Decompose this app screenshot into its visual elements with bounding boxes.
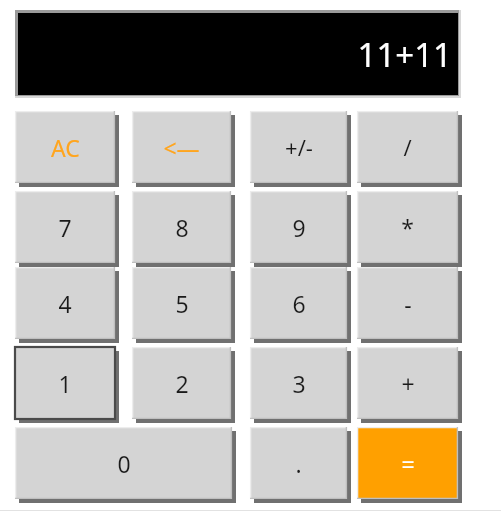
button[interactable]: 0 xyxy=(15,427,236,503)
button[interactable]: = xyxy=(357,427,462,503)
button[interactable]: 5 xyxy=(132,267,235,343)
staticText: 6 xyxy=(292,288,306,319)
button[interactable]: / xyxy=(357,111,462,187)
staticText: / xyxy=(403,132,412,162)
button[interactable]: 9 xyxy=(250,191,351,267)
staticText: 5 xyxy=(175,288,189,319)
staticText: 3 xyxy=(292,368,306,399)
staticText: . xyxy=(295,448,302,479)
staticText: 1 xyxy=(58,368,72,399)
button[interactable]: +/- xyxy=(250,111,351,187)
button[interactable]: 8 xyxy=(132,191,235,267)
button[interactable]: * xyxy=(357,191,462,267)
button[interactable]: AC xyxy=(15,111,119,187)
staticText: 2 xyxy=(175,368,189,399)
staticText: 9 xyxy=(292,212,306,243)
staticText: 4 xyxy=(58,288,72,319)
button[interactable]: 3 xyxy=(250,347,351,423)
button[interactable]: + xyxy=(357,347,462,423)
button[interactable]: - xyxy=(357,267,462,343)
staticText: 0 xyxy=(117,448,131,479)
staticText: = xyxy=(401,448,415,479)
staticText: 11+11 xyxy=(357,32,452,77)
staticText: <— xyxy=(163,132,200,163)
button[interactable]: 6 xyxy=(250,267,351,343)
staticText: 7 xyxy=(58,212,72,243)
button[interactable]: . xyxy=(250,427,351,503)
staticText: + xyxy=(401,368,415,399)
button[interactable]: 2 xyxy=(132,347,235,423)
staticText: AC xyxy=(51,132,80,163)
button[interactable]: 1 xyxy=(15,347,119,423)
button[interactable]: 7 xyxy=(15,191,119,267)
staticText: * xyxy=(401,212,414,243)
staticText: - xyxy=(404,288,412,319)
button[interactable]: 4 xyxy=(15,267,119,343)
button[interactable]: Backspace xyxy=(132,111,235,187)
staticText: 8 xyxy=(175,212,189,243)
staticText: +/- xyxy=(285,132,313,162)
